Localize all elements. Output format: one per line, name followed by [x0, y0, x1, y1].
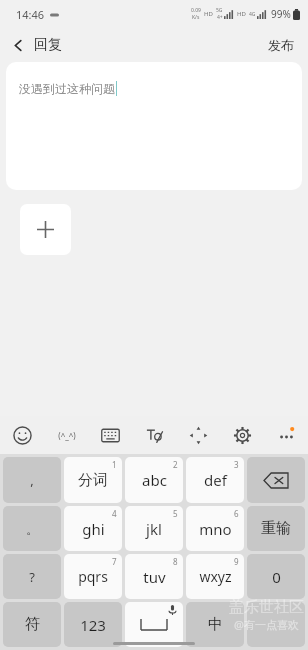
staticText: 回复 — [34, 36, 62, 54]
staticText: (^_^) — [58, 430, 76, 441]
button[interactable]: 中 — [186, 602, 244, 647]
staticText: HD — [237, 10, 246, 18]
staticText: 4G — [249, 11, 256, 18]
staticText: 3 — [234, 459, 239, 470]
staticText: ghi — [82, 519, 105, 539]
staticText: abc — [142, 470, 167, 490]
staticText: 符 — [25, 615, 40, 634]
button[interactable]: 0 — [247, 554, 305, 599]
staticText: 发布 — [268, 37, 294, 53]
button[interactable]: ghi — [64, 506, 122, 551]
button[interactable]: abc — [125, 457, 183, 503]
staticText: 7 — [112, 556, 117, 567]
staticText: ? — [29, 568, 35, 586]
staticText: 2 — [173, 459, 178, 470]
button[interactable]: Keyboard layout — [88, 416, 132, 454]
staticText: 4 — [112, 508, 117, 519]
button[interactable]: 。 — [3, 506, 61, 551]
button[interactable]: ? — [3, 554, 61, 599]
button[interactable]: Kaomoji — [44, 416, 88, 454]
button[interactable]: 没遇到过这种问题 — [6, 62, 302, 190]
staticText: 8 — [173, 556, 178, 567]
other: Back — [12, 39, 25, 52]
button[interactable]: mno — [186, 506, 244, 551]
staticText: 重输 — [261, 519, 291, 538]
button[interactable]: Handwriting — [132, 416, 176, 454]
button[interactable]: More options — [264, 416, 308, 454]
button[interactable]: wxyz — [186, 554, 244, 599]
staticText: , — [30, 471, 34, 489]
button[interactable]: 重输 — [247, 506, 305, 551]
button[interactable]: Space — [125, 602, 183, 647]
staticText: 0.09 — [191, 7, 201, 14]
staticText: 盖乐世社区 — [229, 598, 304, 617]
button[interactable]: 分词 — [64, 457, 122, 503]
staticText: pqrs — [78, 567, 108, 586]
button[interactable]: 符 — [3, 602, 61, 647]
button[interactable]: 123 — [64, 602, 122, 647]
button[interactable]: Language — [247, 602, 305, 647]
button[interactable]: Settings — [220, 416, 264, 454]
staticText: tuv — [143, 567, 166, 587]
staticText: HD — [204, 10, 213, 18]
staticText: wxyz — [199, 567, 232, 586]
button[interactable]: tuv — [125, 554, 183, 599]
staticText: jkl — [146, 519, 162, 539]
button[interactable]: pqrs — [64, 554, 122, 599]
staticText: 0 — [272, 567, 281, 587]
staticText: 9 — [234, 556, 239, 567]
staticText: 。 — [26, 521, 39, 537]
staticText: 分词 — [78, 471, 108, 490]
staticText: 5G — [216, 7, 223, 14]
staticText: 没遇到过这种问题 — [19, 81, 115, 96]
staticText: 123 — [80, 615, 106, 635]
staticText: mno — [199, 519, 232, 539]
button[interactable]: Add photo — [20, 204, 71, 255]
staticText: 99% — [271, 7, 291, 21]
button[interactable]: Move cursor — [176, 416, 220, 454]
staticText: K/s — [192, 14, 200, 21]
button[interactable]: , — [3, 457, 61, 503]
button[interactable]: Emoji — [0, 416, 44, 454]
button[interactable]: 发布 — [254, 31, 308, 59]
staticText: @有一点喜欢 — [234, 617, 299, 632]
staticText: 14:46 — [16, 7, 45, 22]
button[interactable]: Backspace — [247, 457, 305, 503]
staticText: 6 — [234, 508, 239, 519]
staticText: def — [204, 470, 227, 490]
button[interactable]: def — [186, 457, 244, 503]
button[interactable]: jkl — [125, 506, 183, 551]
button[interactable]: Back — [0, 32, 74, 58]
staticText: 4+ — [217, 14, 223, 21]
staticText: 中 — [208, 615, 223, 634]
staticText: 5 — [173, 508, 178, 519]
staticText: 1 — [112, 459, 117, 470]
